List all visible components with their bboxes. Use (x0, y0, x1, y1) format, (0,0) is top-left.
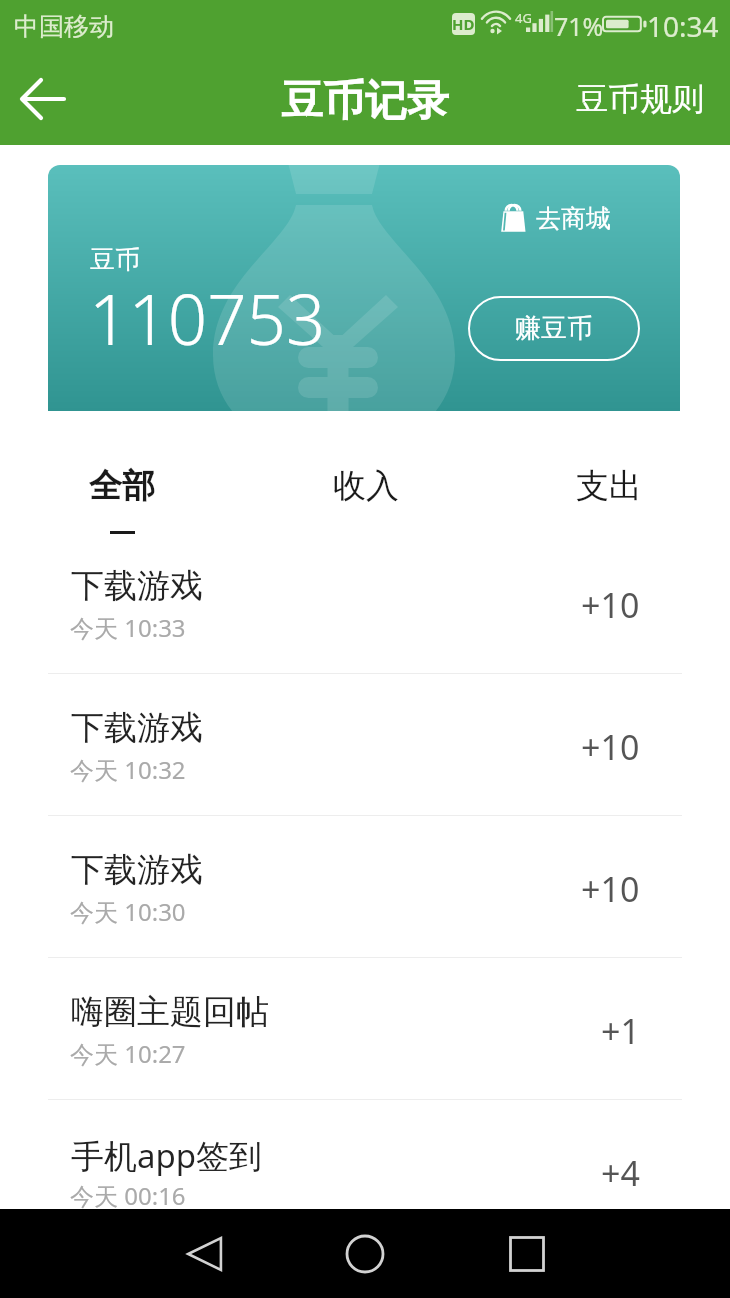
staticText: HD (452, 14, 475, 34)
staticText: 今天 10:32 (70, 753, 186, 786)
staticText: 手机app签到 (71, 1133, 263, 1178)
button[interactable]: 去商城 (498, 202, 611, 235)
staticText: 今天 10:27 (70, 1037, 186, 1070)
button[interactable]: 嗨圈主题回帖 (0, 958, 730, 1099)
staticText: 4G (515, 9, 532, 27)
staticText: 71% (554, 9, 604, 43)
button[interactable]: 下载游戏 (0, 816, 730, 957)
staticText: 110753 (89, 271, 326, 365)
staticText: 今天 00:16 (70, 1179, 186, 1212)
staticText: 豆币 (90, 244, 140, 275)
button[interactable]: 全部 (0, 411, 244, 532)
staticText: +10 (581, 724, 640, 770)
staticText: 下载游戏 (71, 849, 203, 891)
staticText: +1 (601, 1008, 640, 1054)
staticText: 今天 10:30 (70, 895, 186, 928)
staticText: +4 (601, 1150, 640, 1196)
staticText: 嗨圈主题回帖 (71, 991, 269, 1033)
button[interactable]: Back (169, 1227, 239, 1281)
staticText: 今天 10:33 (70, 611, 186, 644)
staticText: 豆币记录 (281, 75, 449, 128)
button[interactable]: 下载游戏 (0, 532, 730, 673)
staticText: 下载游戏 (71, 707, 203, 749)
staticText: 豆币规则 (576, 79, 704, 119)
staticText: 10:34 (647, 7, 719, 45)
button[interactable]: 赚豆币 (468, 296, 640, 361)
staticText: +10 (581, 582, 640, 628)
staticText: 下载游戏 (71, 565, 203, 607)
staticText: 支出 (576, 465, 642, 507)
staticText: +10 (581, 866, 640, 912)
button[interactable]: 手机app签到 (0, 1100, 730, 1241)
button[interactable]: 支出 (487, 411, 730, 532)
staticText: 全部 (89, 465, 155, 507)
button[interactable]: Home (330, 1227, 400, 1281)
button[interactable]: Back (8, 64, 78, 134)
staticText: 去商城 (536, 203, 611, 234)
staticText: 收入 (333, 465, 399, 507)
button[interactable]: 豆币规则 (550, 65, 730, 133)
button[interactable]: Recents (492, 1227, 562, 1281)
button[interactable]: 下载游戏 (0, 674, 730, 815)
button[interactable]: 收入 (244, 411, 487, 532)
staticText: 中国移动 (14, 11, 114, 42)
staticText: 赚豆币 (515, 312, 593, 345)
